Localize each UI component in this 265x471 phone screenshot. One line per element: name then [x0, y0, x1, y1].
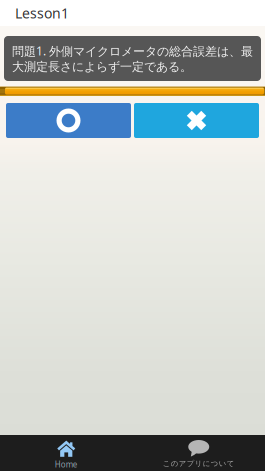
button[interactable]: [6, 103, 131, 138]
button[interactable]: このアプリについて: [132, 435, 265, 471]
staticText: Home: [55, 459, 78, 470]
staticText: 問題1. 外側マイクロメータの総合誤差は、最大測定長さによらず一定である。: [12, 43, 253, 74]
staticText: このアプリについて: [163, 459, 235, 468]
button[interactable]: [134, 103, 259, 138]
button[interactable]: Home: [0, 435, 132, 471]
staticText: Lesson1: [15, 3, 69, 23]
